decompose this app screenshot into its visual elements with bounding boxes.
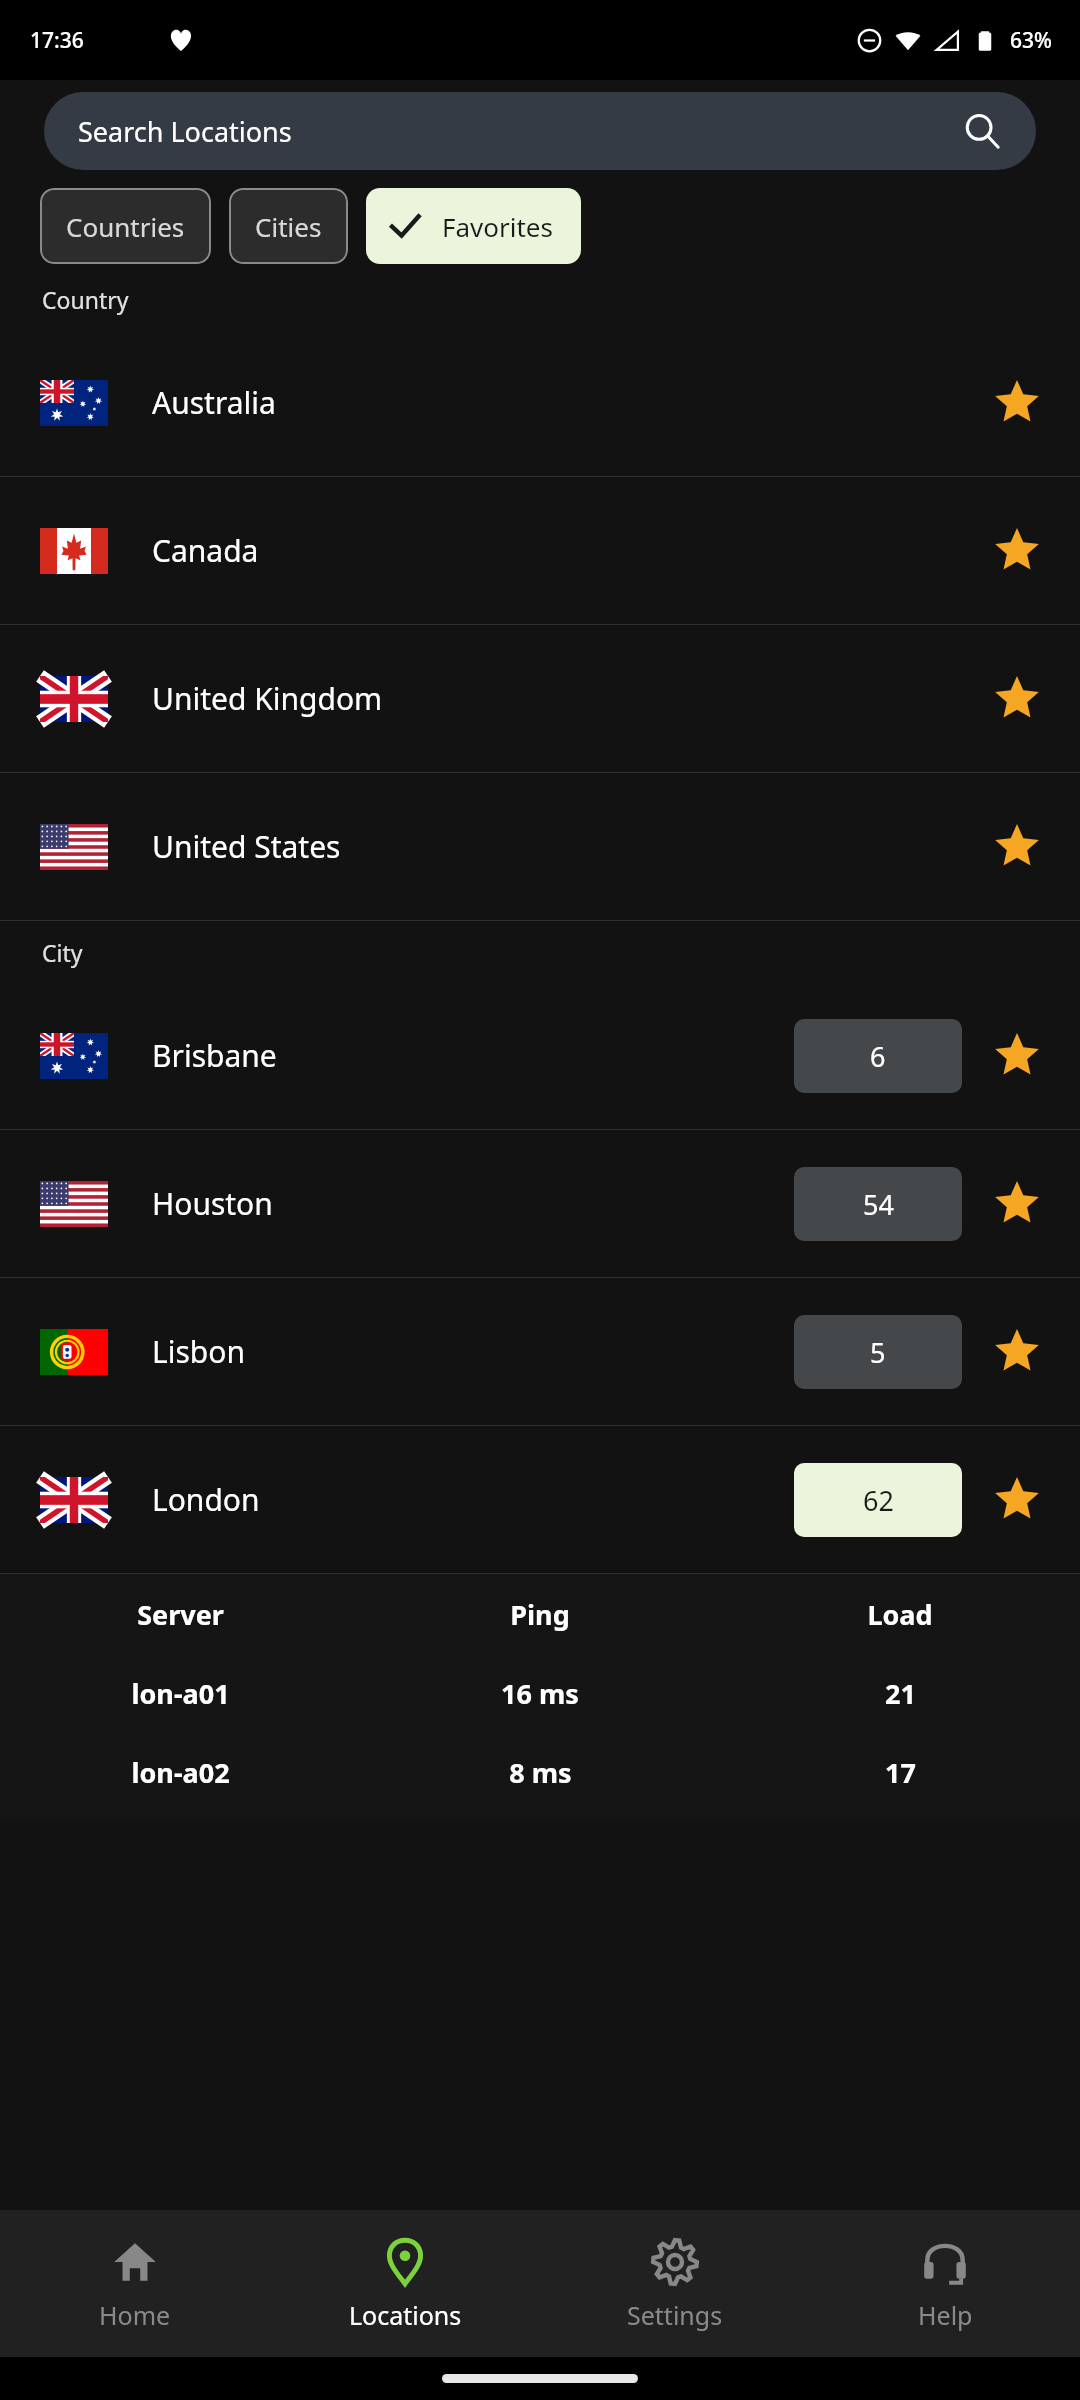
staticText: Australia <box>152 382 276 423</box>
staticText: Load <box>867 1596 933 1633</box>
staticText: Countries <box>66 209 185 244</box>
button[interactable]: Locations <box>270 2210 540 2357</box>
staticText: 62 <box>863 1482 894 1519</box>
staticText: Country <box>42 284 129 315</box>
other: Favorite <box>994 1181 1040 1227</box>
button[interactable]: United States <box>0 773 1080 920</box>
button[interactable]: 54 <box>794 1167 962 1241</box>
button[interactable]: 62 <box>794 1463 962 1537</box>
staticText: Houston <box>152 1183 273 1224</box>
staticText: Brisbane <box>152 1035 277 1076</box>
staticText: 5 <box>870 1334 886 1371</box>
button[interactable]: Settings <box>540 2210 810 2357</box>
staticText: 16 ms <box>501 1675 579 1712</box>
staticText: lon-a01 <box>131 1675 230 1712</box>
other: Favorite <box>994 528 1040 574</box>
staticText: 63% <box>1010 26 1052 55</box>
staticText: United States <box>152 826 341 867</box>
staticText: Home <box>99 2298 171 2332</box>
other: Favorite <box>994 1033 1040 1079</box>
button[interactable]: Search Locations <box>44 92 1036 170</box>
button[interactable]: 5 <box>794 1315 962 1389</box>
other: Favorite <box>994 1329 1040 1375</box>
staticText: United Kingdom <box>152 678 383 719</box>
button[interactable]: Favorites <box>366 188 581 264</box>
staticText: Favorites <box>442 209 553 244</box>
staticText: Cities <box>255 209 322 244</box>
staticText: Settings <box>627 2298 723 2332</box>
staticText: Canada <box>152 530 259 571</box>
button[interactable]: Home <box>0 2210 270 2357</box>
button[interactable]: Help <box>810 2210 1080 2357</box>
button[interactable]: Houston <box>0 1130 1080 1277</box>
staticText: Help <box>918 2298 973 2332</box>
button[interactable]: Brisbane <box>0 982 1080 1129</box>
staticText: 54 <box>863 1186 894 1223</box>
staticText: lon-a02 <box>131 1754 230 1791</box>
staticText: 6 <box>870 1038 886 1075</box>
button[interactable]: London <box>0 1426 1080 1573</box>
staticText: 21 <box>885 1675 916 1712</box>
other: Favorite <box>994 1477 1040 1523</box>
staticText: 17:36 <box>30 26 84 55</box>
button[interactable]: Australia <box>0 329 1080 476</box>
staticText: City <box>42 937 83 968</box>
staticText: Search Locations <box>78 113 292 150</box>
button[interactable]: Countries <box>40 188 211 264</box>
button[interactable]: Cities <box>229 188 348 264</box>
staticText: Server <box>137 1596 224 1633</box>
other: Favorite <box>994 824 1040 870</box>
button[interactable]: United Kingdom <box>0 625 1080 772</box>
staticText: Locations <box>349 2298 462 2332</box>
staticText: London <box>152 1479 260 1520</box>
other: Favorite <box>994 380 1040 426</box>
staticText: 8 ms <box>509 1754 572 1791</box>
button[interactable]: Lisbon <box>0 1278 1080 1425</box>
staticText: Lisbon <box>152 1331 245 1372</box>
staticText: Ping <box>510 1596 570 1633</box>
button[interactable]: 6 <box>794 1019 962 1093</box>
other: Favorite <box>994 676 1040 722</box>
staticText: 17 <box>885 1754 916 1791</box>
button[interactable]: Canada <box>0 477 1080 624</box>
